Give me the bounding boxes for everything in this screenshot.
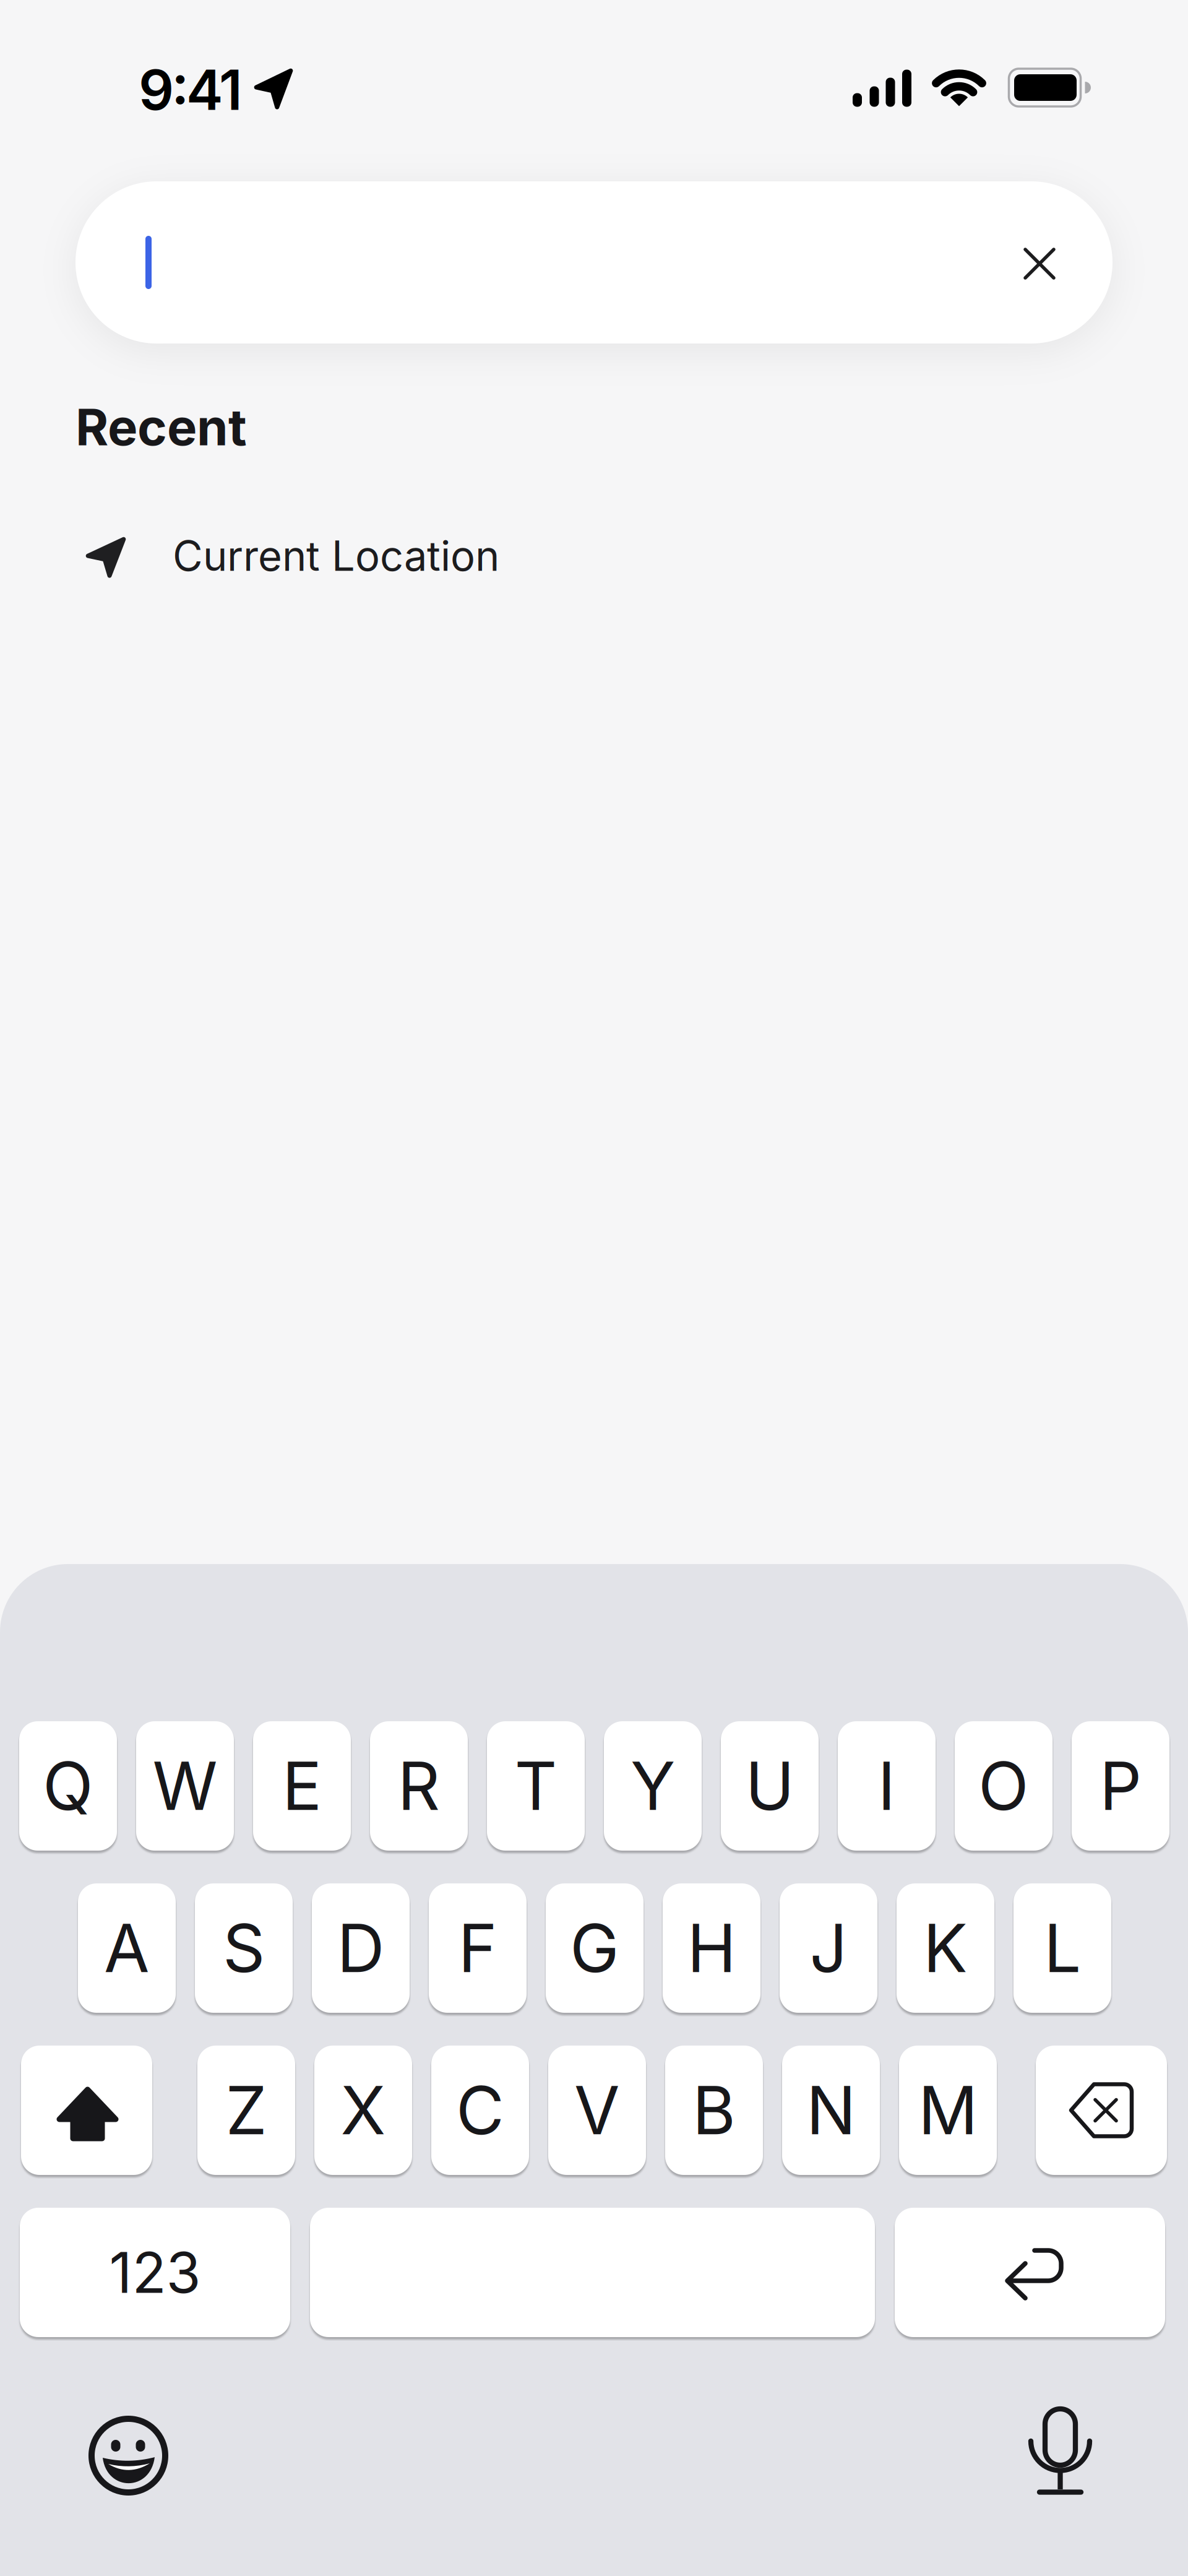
staticText: U (745, 1746, 794, 1826)
staticText: J (810, 1908, 847, 1988)
staticText: O (978, 1746, 1029, 1826)
staticText: A (104, 1908, 150, 1988)
staticText: R (398, 1746, 440, 1826)
staticText: P (1100, 1746, 1142, 1826)
staticText: S (223, 1908, 265, 1988)
staticText: V (574, 2070, 620, 2150)
staticText: T (514, 1746, 557, 1826)
staticText: I (878, 1746, 896, 1826)
staticText: G (570, 1908, 619, 1988)
staticText: Current Location (173, 531, 499, 581)
staticText: M (918, 2070, 978, 2150)
staticText: X (341, 2070, 386, 2150)
staticText: C (456, 2070, 504, 2150)
staticText: F (458, 1908, 497, 1988)
staticText: Z (226, 2070, 267, 2150)
staticText: W (153, 1746, 217, 1826)
staticText: H (687, 1908, 736, 1988)
staticText: E (282, 1746, 322, 1826)
staticText: Recent (75, 397, 247, 458)
staticText: 9:41 (139, 56, 243, 123)
staticText: 123 (109, 2238, 201, 2306)
staticText: B (692, 2070, 736, 2150)
staticText: Y (631, 1746, 675, 1826)
staticText: K (923, 1908, 968, 1988)
staticText: D (337, 1908, 385, 1988)
staticText: Q (43, 1746, 93, 1826)
staticText: L (1044, 1908, 1081, 1988)
staticText: N (806, 2070, 856, 2150)
